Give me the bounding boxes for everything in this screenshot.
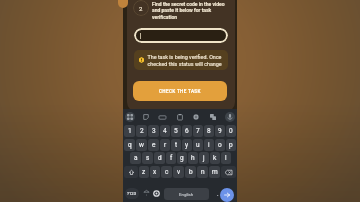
button[interactable]: k (210, 152, 220, 164)
staticText: 7 (196, 127, 200, 135)
staticText: The task is being verified. Once checked… (147, 54, 222, 67)
button[interactable]: o (215, 139, 225, 151)
staticText: n (201, 168, 205, 176)
button[interactable]: CHECK THE TASK (133, 81, 227, 101)
button[interactable]: Settings (191, 112, 201, 122)
staticText: z (142, 168, 146, 176)
button[interactable]: 6 (182, 125, 192, 137)
button[interactable]: r (160, 139, 170, 151)
staticText: 5 (174, 127, 178, 135)
button[interactable]: 2 (136, 125, 147, 137)
staticText: ?123 (127, 191, 137, 196)
button[interactable]: p (226, 139, 236, 151)
staticText: l (225, 154, 227, 162)
button[interactable]: Keyboard switcher (125, 112, 135, 122)
staticText: w (139, 141, 144, 149)
staticText: 3 (152, 127, 156, 135)
button[interactable]: x (150, 166, 160, 178)
button[interactable]: 7 (193, 125, 203, 137)
staticText: u (196, 141, 200, 149)
button[interactable]: 5 (171, 125, 181, 137)
button[interactable]: c (161, 166, 172, 178)
staticText: i (208, 141, 210, 149)
button[interactable]: GIF (157, 112, 167, 122)
button[interactable]: Period (212, 188, 223, 199)
staticText: CHECK THE TASK (159, 89, 201, 94)
button[interactable]: Translate (208, 112, 218, 122)
staticText: s (146, 154, 150, 162)
button[interactable]: Change language (151, 188, 162, 199)
button[interactable]: z (139, 166, 149, 178)
button[interactable]: h (188, 152, 198, 164)
button[interactable]: u (193, 139, 203, 151)
staticText: x (153, 168, 157, 176)
button[interactable]: n (197, 166, 208, 178)
button[interactable]: 8 (204, 125, 214, 137)
staticText: p (229, 141, 233, 149)
staticText: 6 (185, 127, 189, 135)
button[interactable]: e (148, 139, 159, 151)
button[interactable]: y (182, 139, 192, 151)
staticText: c (165, 168, 169, 176)
button[interactable]: Voice input (225, 112, 235, 122)
button[interactable]: g (177, 152, 187, 164)
button[interactable]: 4 (160, 125, 170, 137)
staticText: 0 (229, 127, 233, 135)
staticText: j (203, 154, 205, 162)
button[interactable]: j (199, 152, 209, 164)
button[interactable]: Clipboard (175, 112, 185, 122)
button[interactable]: t (171, 139, 181, 151)
button[interactable]: v (173, 166, 184, 178)
staticText: 2 (139, 5, 143, 12)
staticText: v (177, 168, 181, 176)
staticText: b (189, 168, 193, 176)
button[interactable]: Stickers (141, 112, 151, 122)
button[interactable]: q (124, 139, 135, 151)
button[interactable]: l (221, 152, 231, 164)
staticText: m (212, 168, 218, 176)
button[interactable]: i (204, 139, 214, 151)
button[interactable] (134, 28, 228, 43)
button[interactable]: d (154, 152, 165, 164)
staticText: g (180, 154, 184, 162)
staticText: h (191, 154, 195, 162)
staticText: 8 (207, 127, 211, 135)
staticText: e (152, 141, 156, 149)
button[interactable]: Emoji (141, 188, 152, 199)
staticText: Find the secret code in the video and pa… (152, 1, 225, 21)
staticText: y (185, 141, 189, 149)
staticText: 9 (218, 127, 222, 135)
button[interactable]: a (130, 152, 141, 164)
button[interactable]: w (136, 139, 147, 151)
staticText: q (128, 141, 132, 149)
button[interactable]: 0 (226, 125, 236, 137)
staticText: 1 (128, 127, 132, 135)
button[interactable]: 1 (124, 125, 135, 137)
staticText: English (179, 192, 194, 197)
button[interactable]: 3 (148, 125, 159, 137)
button[interactable]: m (209, 166, 220, 178)
button[interactable]: Shift (124, 166, 138, 178)
button[interactable]: b (185, 166, 196, 178)
staticText: o (218, 141, 222, 149)
button[interactable]: ?123 (125, 188, 139, 199)
staticText: f (170, 154, 173, 162)
staticText: r (164, 141, 167, 149)
staticText: t (175, 141, 178, 149)
button[interactable]: Enter (220, 188, 234, 202)
staticText: k (213, 154, 217, 162)
staticText: 4 (163, 127, 167, 135)
button[interactable]: 9 (215, 125, 225, 137)
staticText: 2 (140, 127, 144, 135)
staticText: d (158, 154, 162, 162)
button[interactable]: The task is being verified. Once checked… (134, 50, 228, 70)
button[interactable]: Backspace (221, 166, 236, 178)
button[interactable]: f (166, 152, 176, 164)
staticText: a (134, 154, 138, 162)
button[interactable]: s (142, 152, 153, 164)
staticText: . (217, 190, 219, 197)
button[interactable]: English (164, 188, 209, 200)
